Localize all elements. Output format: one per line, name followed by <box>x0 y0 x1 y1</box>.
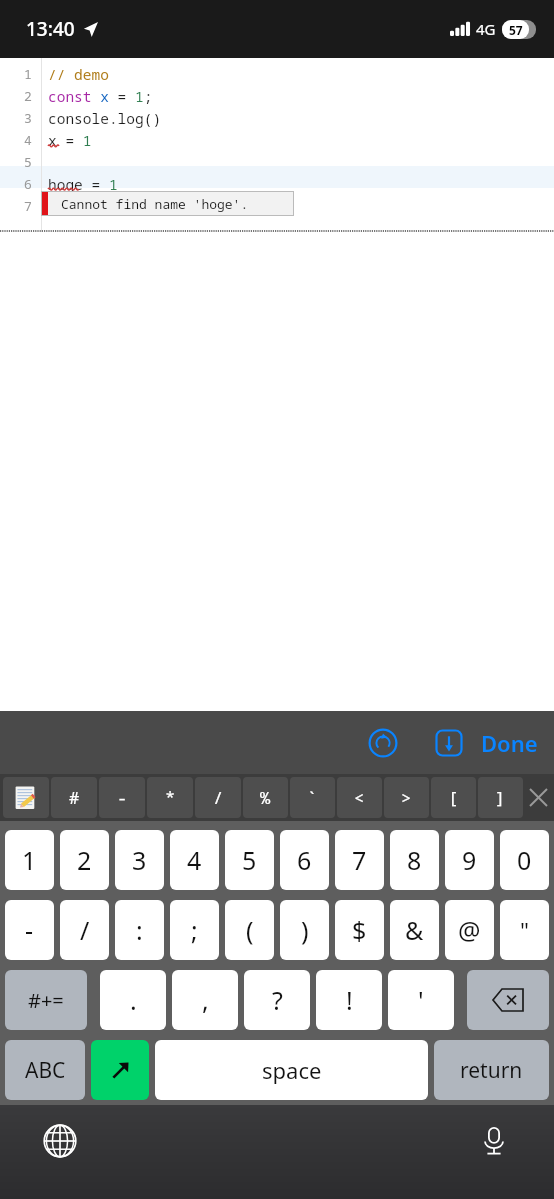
button[interactable]: 3 <box>115 830 164 890</box>
staticText: ABC <box>25 1056 66 1085</box>
button[interactable]: Close <box>524 777 552 818</box>
staticText: / <box>213 786 224 809</box>
button[interactable]: $ <box>335 900 384 960</box>
staticText: # <box>69 786 80 809</box>
button[interactable]: #+= <box>5 970 87 1030</box>
staticText: 6 <box>297 843 312 877</box>
staticText: 1 <box>24 65 32 83</box>
staticText: 3 <box>132 843 147 877</box>
staticText: space <box>262 1055 322 1085</box>
button[interactable]: : <box>115 900 164 960</box>
button[interactable]: @ <box>445 900 494 960</box>
button[interactable]: 7 <box>335 830 384 890</box>
button[interactable]: Snippets <box>3 777 49 818</box>
staticText: 5 <box>242 843 257 877</box>
button[interactable]: Change keyboard <box>38 1119 82 1163</box>
staticText: 13:40 <box>26 16 75 42</box>
staticText: : <box>136 913 143 947</box>
staticText: $ <box>352 913 367 947</box>
staticText: ' <box>418 983 424 1017</box>
button[interactable]: 0 <box>500 830 549 890</box>
staticText: 6 <box>24 175 32 193</box>
button[interactable]: " <box>500 900 549 960</box>
button[interactable]: Dictation <box>472 1119 516 1163</box>
staticText: 4 <box>187 843 202 877</box>
button[interactable]: 5 <box>225 830 274 890</box>
staticText: > <box>401 786 412 809</box>
button[interactable]: 4 <box>170 830 219 890</box>
staticText: 8 <box>407 843 422 877</box>
button[interactable]: Done <box>481 728 538 758</box>
button[interactable]: / <box>195 777 241 818</box>
staticText: Done <box>481 728 538 758</box>
button[interactable]: ) <box>280 900 329 960</box>
staticText: // demo <box>48 64 109 84</box>
button[interactable]: ] <box>478 777 523 818</box>
button[interactable]: 9 <box>445 830 494 890</box>
button[interactable]: return <box>434 1040 549 1100</box>
staticText: 1 <box>22 843 37 877</box>
button[interactable]: 6 <box>280 830 329 890</box>
button[interactable]: % <box>243 777 288 818</box>
staticText: const x = 1; <box>48 86 153 106</box>
staticText: 3 <box>24 109 32 127</box>
staticText: 4 <box>24 131 32 149</box>
staticText: 7 <box>352 843 367 877</box>
staticText: 0 <box>517 843 532 877</box>
button[interactable]: ( <box>225 900 274 960</box>
button[interactable]: ? <box>244 970 310 1030</box>
staticText: 4G <box>476 19 496 39</box>
staticText: ; <box>191 913 198 947</box>
staticText: ( <box>246 913 254 947</box>
staticText: ] <box>495 786 506 809</box>
button[interactable]: ; <box>170 900 219 960</box>
staticText: x = 1 <box>48 130 92 150</box>
button[interactable]: / <box>60 900 109 960</box>
button[interactable]: > <box>384 777 429 818</box>
button[interactable]: Run <box>361 721 405 765</box>
button[interactable]: ! <box>316 970 382 1030</box>
button[interactable]: ABC <box>5 1040 85 1100</box>
staticText: , <box>202 983 209 1017</box>
button[interactable]: ' <box>388 970 454 1030</box>
staticText: % <box>260 786 271 809</box>
button[interactable]: space <box>155 1040 428 1100</box>
staticText: [ <box>448 786 459 809</box>
staticText: 2 <box>77 843 92 877</box>
staticText: Cannot find name 'hoge'. <box>61 195 249 213</box>
staticText: " <box>520 915 529 945</box>
button[interactable]: Insert <box>427 721 471 765</box>
button[interactable]: # <box>51 777 97 818</box>
staticText: 9 <box>462 843 477 877</box>
staticText: ) <box>301 913 309 947</box>
button[interactable]: < <box>337 777 382 818</box>
staticText: return <box>460 1056 523 1085</box>
staticText: @ <box>458 913 481 947</box>
staticText: 5 <box>24 153 32 171</box>
button[interactable]: 2 <box>60 830 109 890</box>
staticText: * <box>165 786 176 809</box>
staticText: #+= <box>28 987 64 1014</box>
button[interactable]: , <box>172 970 238 1030</box>
staticText: console.log() <box>48 108 162 128</box>
button[interactable]: - <box>5 900 54 960</box>
staticText: hoge = 1 <box>48 174 118 194</box>
staticText: 7 <box>24 197 32 215</box>
button[interactable]: . <box>100 970 166 1030</box>
button[interactable]: ` <box>290 777 335 818</box>
staticText: & <box>405 913 424 947</box>
button[interactable]: & <box>390 900 439 960</box>
staticText: 57 <box>509 22 523 38</box>
button[interactable]: 1 <box>5 830 54 890</box>
staticText: ? <box>272 983 283 1017</box>
staticText: - <box>25 913 34 947</box>
button[interactable]: * <box>147 777 193 818</box>
staticText: - <box>117 786 128 809</box>
staticText: 2 <box>24 87 32 105</box>
button[interactable]: Delete <box>467 970 549 1030</box>
button[interactable]: [ <box>431 777 476 818</box>
staticText: . <box>130 983 137 1017</box>
button[interactable]: - <box>99 777 145 818</box>
button[interactable]: 8 <box>390 830 439 890</box>
button[interactable]: Tab <box>91 1040 149 1100</box>
